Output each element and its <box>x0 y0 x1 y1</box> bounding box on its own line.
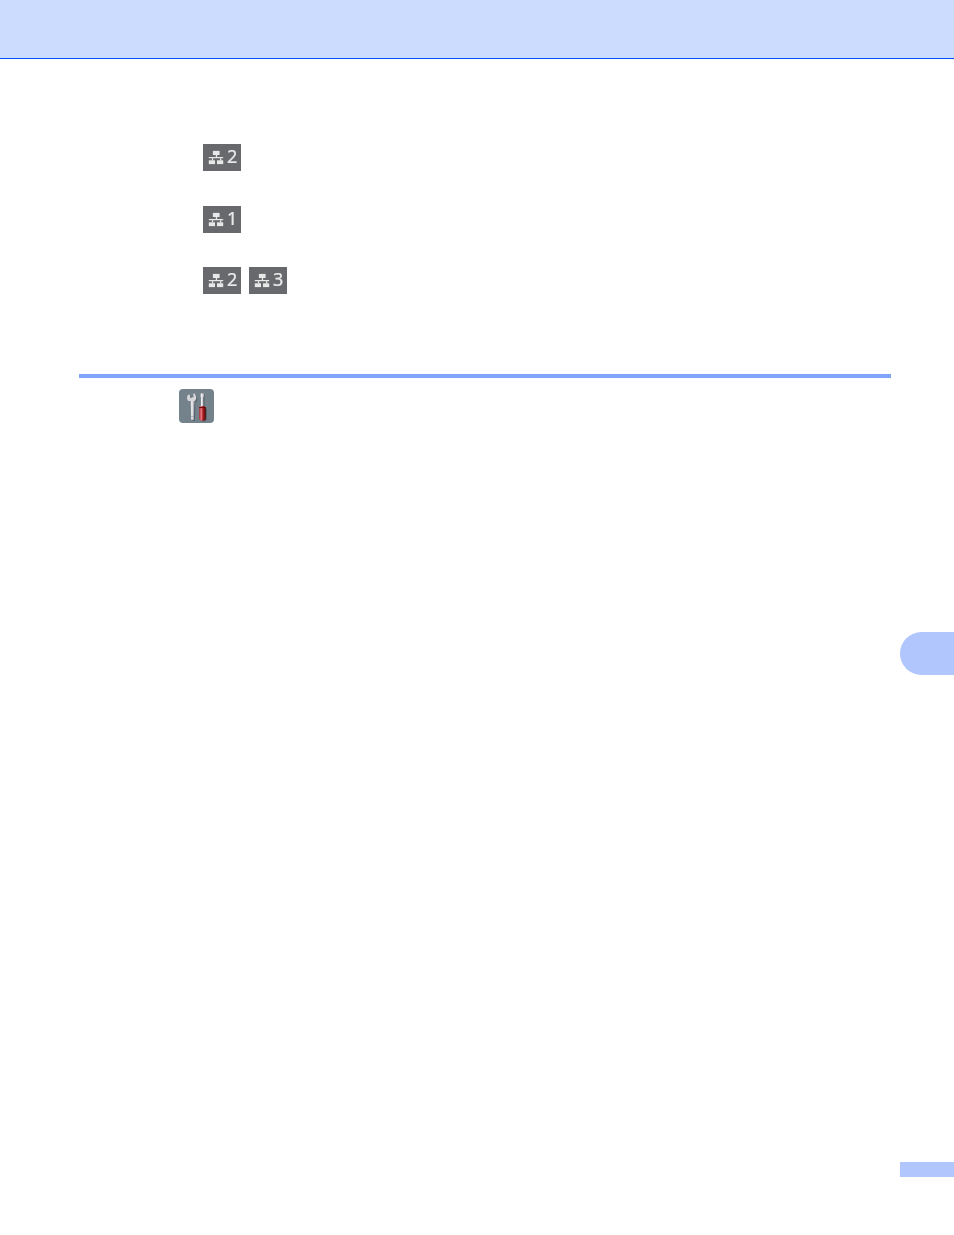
button[interactable]: Wired network mode 1 <box>203 206 241 233</box>
button[interactable]: Wired network mode 2 <box>203 144 241 171</box>
button[interactable]: Wired network mode 3 <box>249 267 287 294</box>
staticText: 2 <box>227 267 238 292</box>
button[interactable]: Wired network mode 2 <box>203 267 241 294</box>
button[interactable]: Chapter tab <box>900 632 954 675</box>
staticText: 1 <box>227 206 238 231</box>
staticText: 2 <box>227 144 238 169</box>
button[interactable]: Maintenance tools <box>179 389 214 423</box>
staticText: 3 <box>273 267 284 292</box>
